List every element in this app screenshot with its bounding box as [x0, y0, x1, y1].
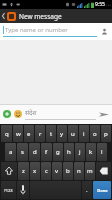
staticText: y	[60, 130, 64, 138]
button[interactable]: m	[85, 162, 95, 180]
button[interactable]: ?123	[1, 181, 16, 199]
button[interactable]: c	[41, 162, 51, 180]
staticText: Type name or number	[5, 26, 68, 34]
button[interactable]: .	[82, 181, 92, 199]
button[interactable]: Done	[93, 181, 111, 199]
staticText: q	[5, 130, 9, 138]
button[interactable]: संदेश	[25, 109, 96, 120]
button[interactable]: o	[90, 125, 100, 142]
staticText: ?123	[4, 188, 13, 193]
button[interactable]: d	[29, 143, 40, 161]
button[interactable]: p	[101, 125, 111, 142]
staticText: संदेश	[25, 109, 37, 117]
button[interactable]: u	[68, 125, 78, 142]
button[interactable]: q	[1, 125, 12, 142]
staticText: w	[16, 130, 21, 138]
staticText: n	[77, 167, 81, 175]
staticText: m	[87, 167, 93, 175]
button[interactable]: e	[24, 125, 34, 142]
button[interactable]: i	[79, 125, 89, 142]
staticText: v	[55, 167, 59, 175]
staticText: p	[104, 130, 108, 138]
staticText: f	[45, 148, 48, 156]
button[interactable]: h	[64, 143, 74, 161]
button[interactable]: x	[30, 162, 40, 180]
staticText: r	[39, 130, 42, 138]
button[interactable]: Voice input	[17, 181, 29, 199]
staticText: s	[21, 148, 24, 156]
button[interactable]: Attach	[2, 109, 12, 119]
staticText: a	[9, 148, 13, 156]
button[interactable]: Add contact	[100, 27, 109, 36]
staticText: i	[83, 130, 85, 138]
staticText: 9:55	[95, 1, 105, 8]
staticText: t	[50, 130, 53, 138]
staticText: k	[89, 148, 93, 156]
button[interactable]: g	[53, 143, 63, 161]
button[interactable]: Send	[98, 108, 110, 120]
staticText: l	[101, 148, 103, 156]
button[interactable]: n	[74, 162, 84, 180]
button[interactable]: Backspace	[96, 162, 111, 180]
button[interactable]: v	[52, 162, 62, 180]
button[interactable]: Shift	[1, 162, 17, 180]
other: Back	[2, 13, 5, 19]
button[interactable]: s	[17, 143, 28, 161]
button[interactable]: Emoji	[13, 109, 23, 119]
staticText: u	[71, 130, 75, 138]
staticText: d	[33, 148, 37, 156]
button[interactable]: w	[13, 125, 23, 142]
staticText: g	[56, 148, 60, 156]
button[interactable]: b	[63, 162, 73, 180]
button[interactable]: l	[97, 143, 107, 161]
staticText: c	[45, 167, 48, 175]
button[interactable]: z	[18, 162, 29, 180]
staticText: h	[67, 148, 71, 156]
button[interactable]: y	[57, 125, 67, 142]
staticText: Done	[97, 188, 108, 193]
staticText: e	[27, 130, 31, 138]
button[interactable]: f	[41, 143, 52, 161]
button[interactable]: t	[46, 125, 56, 142]
staticText: .	[86, 186, 88, 194]
staticText: z	[22, 167, 25, 175]
button[interactable]: j	[75, 143, 85, 161]
button[interactable]: k	[86, 143, 96, 161]
staticText: j	[79, 148, 81, 156]
staticText: o	[93, 130, 97, 138]
staticText: New message	[19, 12, 62, 21]
staticText: x	[33, 167, 37, 175]
staticText: b	[66, 167, 70, 175]
button[interactable]: a	[5, 143, 16, 161]
button[interactable]: r	[35, 125, 45, 142]
